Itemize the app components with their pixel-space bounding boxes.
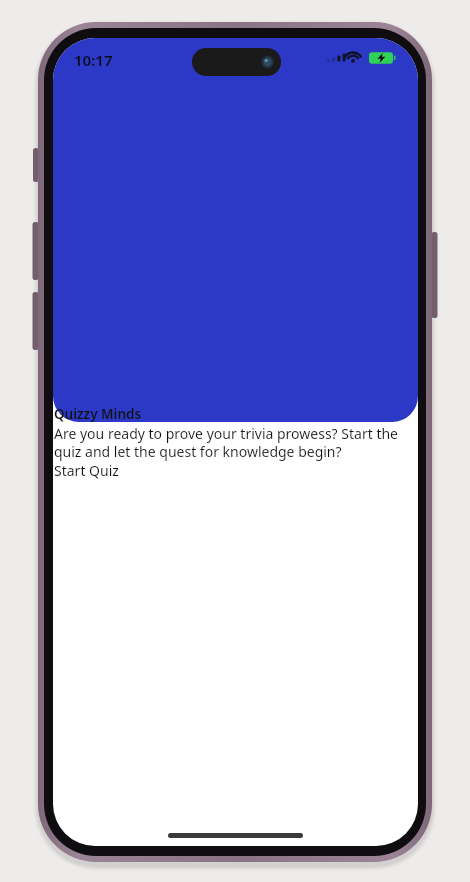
staticText: Are you ready to prove your trivia prowe… — [54, 424, 417, 461]
button[interactable]: Start Quiz — [54, 461, 119, 480]
other: Dynamic Island — [192, 48, 281, 76]
staticText: Quizzy Minds — [54, 405, 142, 423]
staticText: Start Quiz — [54, 461, 119, 480]
staticText: 10:17 — [74, 50, 113, 70]
